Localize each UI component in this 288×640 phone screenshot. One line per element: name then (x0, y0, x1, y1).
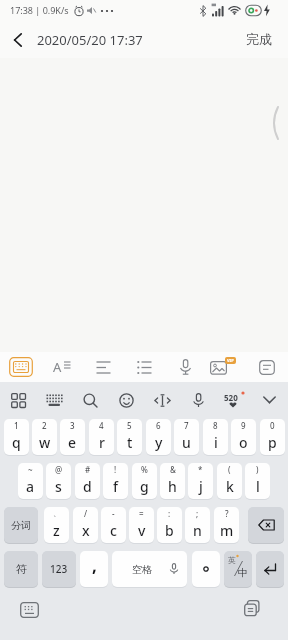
button[interactable] (88, 352, 118, 382)
staticText: 17:38 | 0.9K/s (10, 4, 69, 16)
button[interactable]: / (73, 507, 98, 543)
button[interactable]: ) (245, 463, 270, 499)
button[interactable]: 520 (218, 384, 250, 416)
button[interactable]: 空格 (112, 551, 187, 587)
staticText: 空格 (132, 563, 152, 576)
button[interactable]: 符 (4, 551, 38, 587)
staticText: VIP (227, 358, 234, 363)
button[interactable] (253, 384, 285, 416)
button[interactable] (182, 384, 214, 416)
staticText: ; (196, 508, 199, 519)
staticText: f (113, 477, 118, 496)
staticText: % (141, 464, 148, 475)
button[interactable]: - (101, 507, 126, 543)
button[interactable] (17, 598, 41, 622)
staticText: t (127, 433, 133, 452)
button[interactable]: 、 (44, 507, 69, 543)
staticText: d (83, 477, 92, 496)
staticText: & (170, 464, 176, 475)
button[interactable]: @ (46, 463, 71, 499)
staticText: 8 (213, 420, 218, 431)
button[interactable] (2, 384, 34, 416)
button[interactable]: 完成 (246, 31, 272, 47)
button[interactable] (6, 28, 30, 52)
staticText: a (26, 477, 35, 496)
button[interactable]: = (129, 507, 154, 543)
staticText: 英 (228, 555, 236, 565)
staticText: s (55, 477, 62, 496)
button[interactable] (170, 352, 200, 382)
button[interactable]: 分词 (4, 507, 38, 543)
staticText: 2 (42, 420, 47, 431)
button[interactable]: ; (185, 507, 210, 543)
button[interactable]: % (132, 463, 157, 499)
button[interactable]: ! (103, 463, 128, 499)
button[interactable]: VIP (208, 352, 238, 382)
staticText: x (82, 521, 90, 540)
button[interactable]: 7 (174, 419, 199, 455)
staticText: 中 (238, 566, 248, 579)
button[interactable] (252, 352, 282, 382)
staticText: ( (228, 464, 231, 475)
button[interactable] (192, 551, 220, 587)
button[interactable]: 0 (260, 419, 285, 455)
button[interactable] (6, 352, 36, 382)
button[interactable]: * (188, 463, 213, 499)
staticText: k (226, 477, 234, 496)
staticText: # (85, 464, 91, 475)
staticText: 5 (127, 420, 132, 431)
staticText: 2020/05/20 17:37 (37, 31, 143, 49)
staticText: g (140, 477, 149, 496)
button[interactable]: & (160, 463, 185, 499)
button[interactable] (38, 384, 70, 416)
staticText: u (182, 433, 191, 452)
staticText: j (199, 477, 203, 496)
button[interactable]: 5 (117, 419, 142, 455)
button[interactable]: ~ (18, 463, 43, 499)
button[interactable]: 英 (224, 551, 252, 587)
button[interactable] (256, 551, 284, 587)
staticText: 1 (14, 420, 19, 431)
staticText: * (198, 464, 203, 475)
button[interactable] (110, 384, 142, 416)
staticText: e (68, 433, 77, 452)
staticText: 、 (53, 508, 61, 518)
button[interactable]: 4 (89, 419, 114, 455)
button[interactable] (129, 352, 159, 382)
button[interactable]: 9 (231, 419, 256, 455)
button[interactable]: A (47, 352, 77, 382)
staticText: i (214, 433, 218, 452)
staticText: q (12, 433, 21, 452)
button[interactable]: ? (214, 507, 239, 543)
button[interactable]: 6 (146, 419, 171, 455)
staticText: y (155, 433, 163, 452)
button[interactable]: # (75, 463, 100, 499)
staticText: , (92, 554, 97, 577)
staticText: 520 (224, 392, 238, 403)
button[interactable] (241, 597, 265, 621)
button[interactable]: 3 (60, 419, 85, 455)
staticText: 9 (241, 420, 246, 431)
staticText: p (268, 433, 277, 452)
staticText: ! (114, 464, 117, 475)
button[interactable]: 2 (32, 419, 57, 455)
staticText: w (39, 433, 51, 452)
button[interactable]: , (80, 551, 108, 587)
button[interactable]: 8 (203, 419, 228, 455)
button[interactable] (248, 507, 284, 543)
staticText: ) (256, 464, 259, 475)
staticText: 完成 (246, 31, 272, 47)
button[interactable]: ( (217, 463, 242, 499)
staticText: z (53, 521, 60, 540)
button[interactable] (74, 384, 106, 416)
staticText: 7 (184, 420, 189, 431)
button[interactable]: 1 (4, 419, 29, 455)
staticText: r (99, 433, 105, 452)
button[interactable] (146, 384, 178, 416)
staticText: h (168, 477, 177, 496)
staticText: n (193, 521, 202, 540)
button[interactable]: 123 (42, 551, 76, 587)
staticText: ~ (28, 464, 33, 475)
staticText: 123 (50, 562, 68, 576)
button[interactable]: : (157, 507, 182, 543)
